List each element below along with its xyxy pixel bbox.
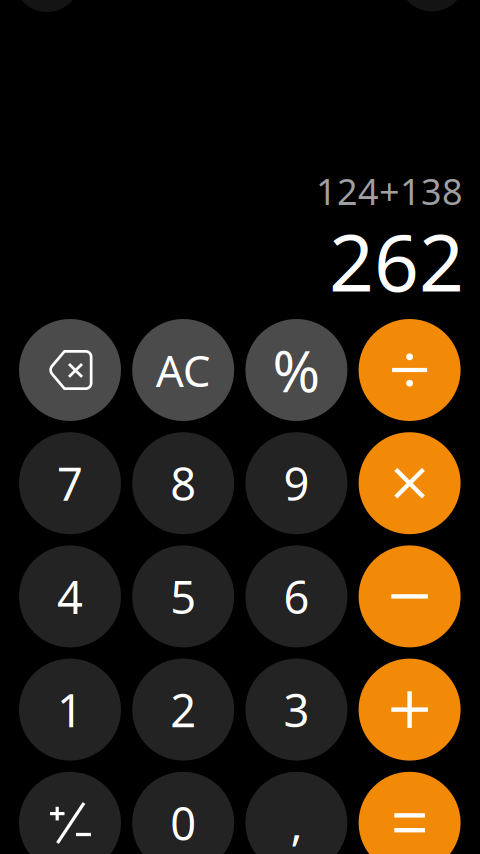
staticText: %	[272, 332, 320, 408]
staticText: 9	[283, 453, 309, 513]
button[interactable]: 0	[132, 772, 234, 854]
button[interactable]: Equals	[359, 772, 461, 854]
button[interactable]: Delete	[19, 319, 121, 421]
staticText: AC	[156, 341, 211, 399]
staticText: 124+138	[316, 167, 463, 215]
button[interactable]: 5	[132, 545, 234, 647]
button[interactable]: 9	[245, 432, 347, 534]
button[interactable]: Minus	[359, 545, 461, 647]
staticText: 2	[170, 679, 196, 740]
button[interactable]: AC	[132, 319, 234, 421]
staticText: 3	[283, 679, 309, 740]
button[interactable]: Plus	[359, 659, 461, 761]
staticText: 1	[57, 679, 83, 740]
button[interactable]: 6	[245, 545, 347, 647]
button[interactable]: 1	[19, 659, 121, 761]
staticText: 262	[329, 209, 464, 313]
staticText: 6	[283, 566, 309, 626]
staticText: 0	[170, 793, 196, 853]
button[interactable]: 4	[19, 545, 121, 647]
staticText: 7	[57, 453, 83, 513]
staticText: 5	[170, 566, 196, 626]
staticText: ,	[290, 793, 302, 853]
button[interactable]: 2	[132, 659, 234, 761]
button[interactable]: Toggle sign	[19, 772, 121, 854]
staticText: 4	[57, 566, 83, 626]
button[interactable]: %	[245, 319, 347, 421]
button[interactable]: 3	[245, 659, 347, 761]
button[interactable]: 8	[132, 432, 234, 534]
button[interactable]: Multiply	[359, 432, 461, 534]
staticText: 8	[170, 453, 196, 513]
button[interactable]: Divide	[359, 319, 461, 421]
button[interactable]: ,	[245, 772, 347, 854]
button[interactable]: 7	[19, 432, 121, 534]
